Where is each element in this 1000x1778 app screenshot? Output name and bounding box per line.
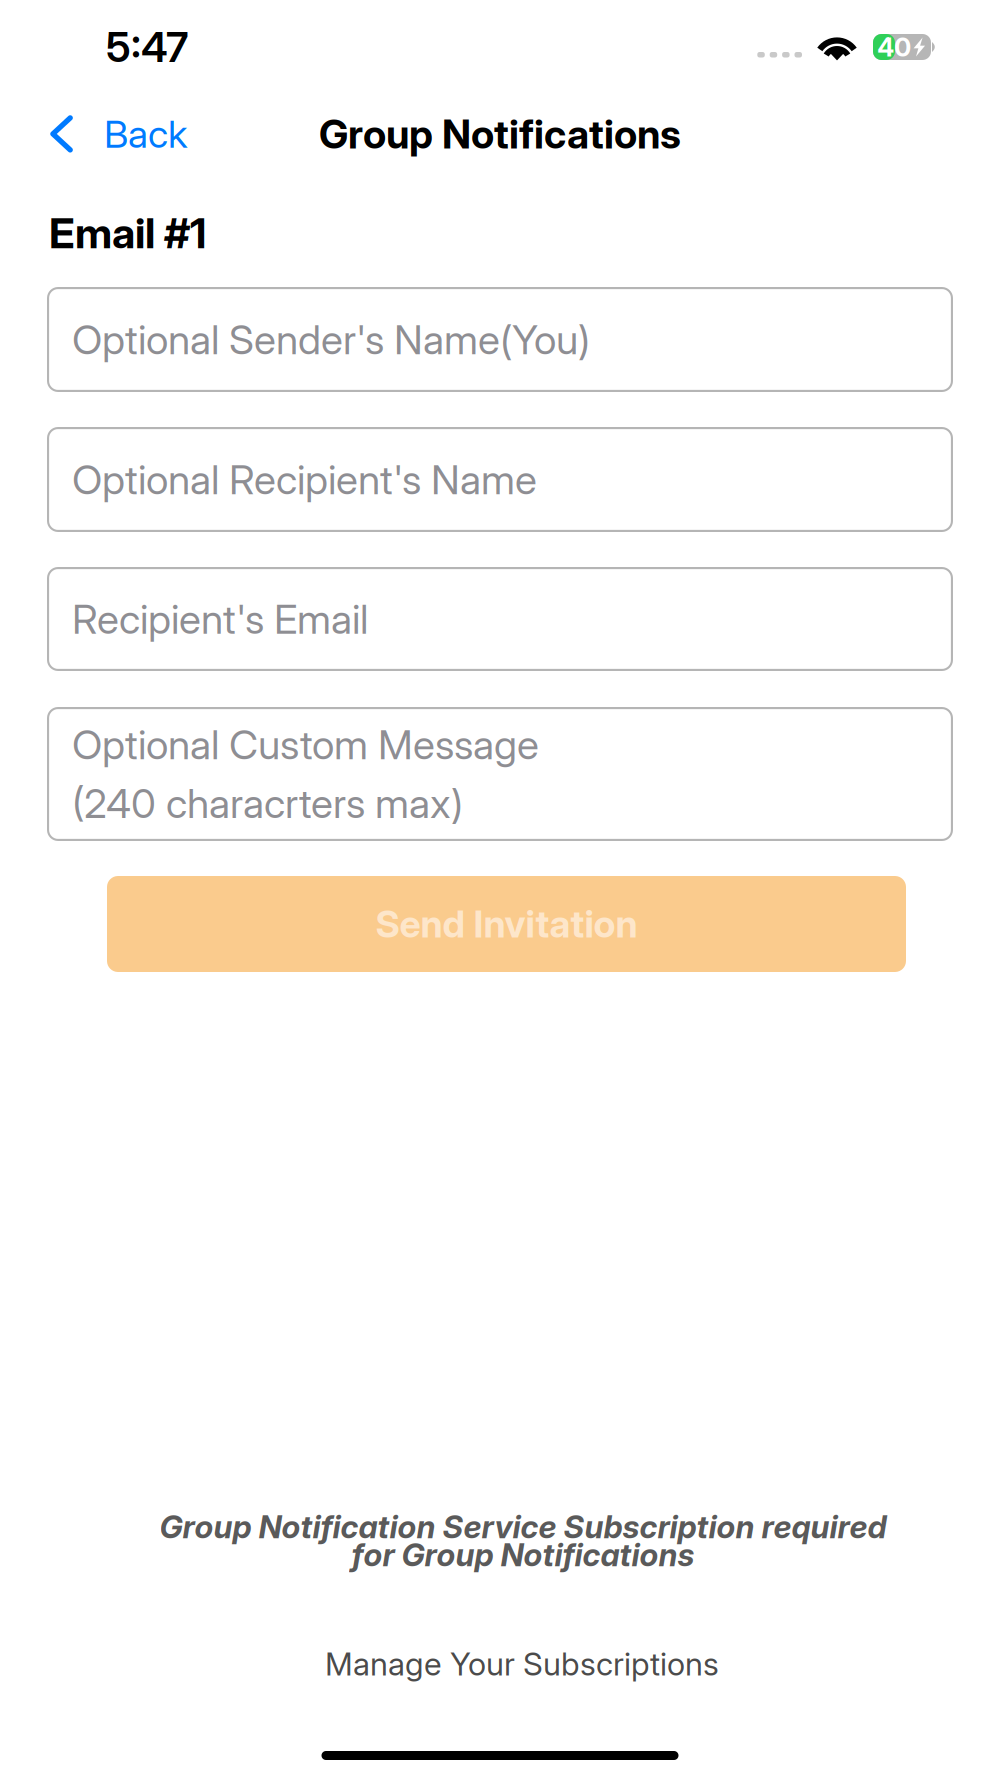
staticText: Manage Your Subscriptions (325, 1645, 719, 1683)
staticText: Optional Custom Message (72, 720, 539, 769)
staticText: Recipient's Email (72, 595, 368, 643)
button[interactable]: Optional Recipient's Name (47, 427, 953, 532)
staticText: Group Notification Service Subscription … (159, 1508, 886, 1546)
staticText: for Group Notifications (351, 1536, 694, 1574)
staticText: 40 (877, 31, 911, 63)
staticText: 5:47 (106, 22, 188, 72)
staticText: Optional Recipient's Name (72, 455, 537, 504)
button[interactable]: Back (0, 103, 204, 165)
button[interactable]: Recipient's Email (47, 567, 953, 671)
button[interactable]: Optional Custom Message (47, 707, 953, 841)
staticText: Optional Sender's Name(You) (72, 315, 590, 364)
button[interactable]: Manage Your Subscriptions (303, 1635, 741, 1693)
staticText: Send Invitation (375, 901, 637, 947)
staticText: Email #1 (49, 208, 206, 258)
staticText: (240 characrters max) (72, 779, 463, 828)
button[interactable]: Optional Sender's Name(You) (47, 287, 953, 392)
button[interactable]: Send Invitation (107, 876, 906, 972)
staticText: Group Notifications (319, 110, 681, 158)
staticText: Back (104, 111, 188, 157)
